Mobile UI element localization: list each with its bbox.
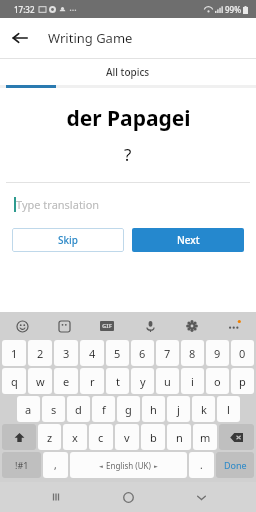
button[interactable]: Back	[0, 18, 40, 58]
staticText: 17:32	[14, 4, 35, 15]
button[interactable]: q	[2, 368, 26, 394]
staticText: der Papagei	[66, 104, 191, 133]
button[interactable]: u	[156, 368, 179, 394]
button[interactable]: 5	[106, 340, 129, 366]
button[interactable]: Stickers	[54, 316, 74, 336]
button[interactable]: .	[189, 452, 214, 478]
staticText: 8	[189, 346, 196, 361]
button[interactable]: Done	[216, 452, 254, 478]
staticText: y	[140, 374, 146, 389]
staticText: r	[90, 374, 95, 389]
staticText: ?	[124, 143, 132, 166]
staticText: 0	[239, 346, 246, 361]
staticText: p	[239, 374, 246, 389]
staticText: 3	[63, 346, 70, 361]
button[interactable]: 3	[54, 340, 78, 366]
button[interactable]: s	[42, 396, 65, 422]
button[interactable]: o	[206, 368, 229, 394]
staticText: e	[63, 374, 70, 389]
button[interactable]: n	[167, 424, 191, 450]
button[interactable]: Back	[184, 482, 218, 512]
button[interactable]: ,	[43, 452, 68, 478]
button[interactable]: More options	[224, 316, 244, 336]
staticText: o	[214, 374, 221, 389]
button[interactable]: Shift	[2, 424, 36, 450]
staticText: d	[75, 402, 82, 417]
staticText: 7	[164, 346, 171, 361]
button[interactable]: h	[142, 396, 165, 422]
button[interactable]: 2	[28, 340, 52, 366]
staticText: t	[116, 374, 120, 389]
staticText: x	[72, 430, 78, 445]
staticText: Next	[177, 233, 200, 247]
staticText: h	[150, 402, 157, 417]
staticText: m	[200, 430, 211, 445]
button[interactable]: GIF	[96, 315, 118, 337]
button[interactable]: Voice input	[140, 316, 160, 336]
button[interactable]: w	[28, 368, 52, 394]
staticText: ►	[154, 463, 158, 469]
button[interactable]: Space	[70, 452, 187, 478]
staticText: s	[51, 402, 57, 417]
button[interactable]: x	[63, 424, 87, 450]
staticText: q	[11, 374, 18, 389]
button[interactable]: Backspace	[219, 424, 254, 450]
staticText: 2	[37, 346, 44, 361]
staticText: Done	[224, 459, 247, 471]
staticText: b	[150, 430, 157, 445]
staticText: 5	[114, 346, 121, 361]
button[interactable]: Next	[132, 228, 244, 252]
button[interactable]: 6	[131, 340, 154, 366]
button[interactable]: v	[115, 424, 139, 450]
button[interactable]: k	[192, 396, 215, 422]
staticText: ◄	[99, 463, 103, 469]
button[interactable]: Home	[111, 482, 145, 512]
staticText: English (UK)	[106, 460, 151, 471]
button[interactable]: 8	[181, 340, 204, 366]
button[interactable]: f	[92, 396, 115, 422]
staticText: !#1	[15, 459, 29, 471]
staticText: a	[25, 402, 32, 417]
staticText: g	[125, 402, 132, 417]
button[interactable]: Settings	[182, 316, 202, 336]
button[interactable]: !#1	[2, 452, 41, 478]
staticText: n	[176, 430, 183, 445]
staticText: v	[124, 430, 130, 445]
button[interactable]: All topics	[0, 59, 256, 85]
button[interactable]: Recents	[39, 482, 73, 512]
staticText: 99%	[225, 4, 241, 15]
button[interactable]: j	[167, 396, 190, 422]
button[interactable]: l	[217, 396, 240, 422]
button[interactable]: 7	[156, 340, 179, 366]
button[interactable]: d	[67, 396, 90, 422]
staticText: i	[191, 374, 194, 389]
button[interactable]: 0	[231, 340, 254, 366]
button[interactable]: g	[117, 396, 140, 422]
button[interactable]: c	[89, 424, 113, 450]
staticText: Skip	[58, 233, 78, 247]
button[interactable]: e	[54, 368, 78, 394]
button[interactable]: 4	[80, 340, 104, 366]
button[interactable]: y	[131, 368, 154, 394]
staticText: Writing Game	[48, 29, 133, 47]
button[interactable]: z	[38, 424, 61, 450]
button[interactable]: m	[193, 424, 217, 450]
staticText: 6	[139, 346, 146, 361]
button[interactable]: 9	[206, 340, 229, 366]
button[interactable]: p	[231, 368, 254, 394]
staticText: GIF	[102, 322, 112, 330]
staticText: 9	[214, 346, 221, 361]
button[interactable]: b	[141, 424, 165, 450]
button[interactable]: i	[181, 368, 204, 394]
staticText: .	[200, 458, 203, 472]
staticText: c	[98, 430, 104, 445]
staticText: w	[36, 374, 45, 389]
button[interactable]: Skip	[12, 228, 124, 252]
button[interactable]: a	[17, 396, 40, 422]
button[interactable]: r	[80, 368, 104, 394]
button[interactable]: 1	[2, 340, 26, 366]
staticText: 4	[89, 346, 96, 361]
button[interactable]: Emoji	[12, 316, 32, 336]
staticText: Type translation	[16, 197, 100, 212]
button[interactable]: t	[106, 368, 129, 394]
